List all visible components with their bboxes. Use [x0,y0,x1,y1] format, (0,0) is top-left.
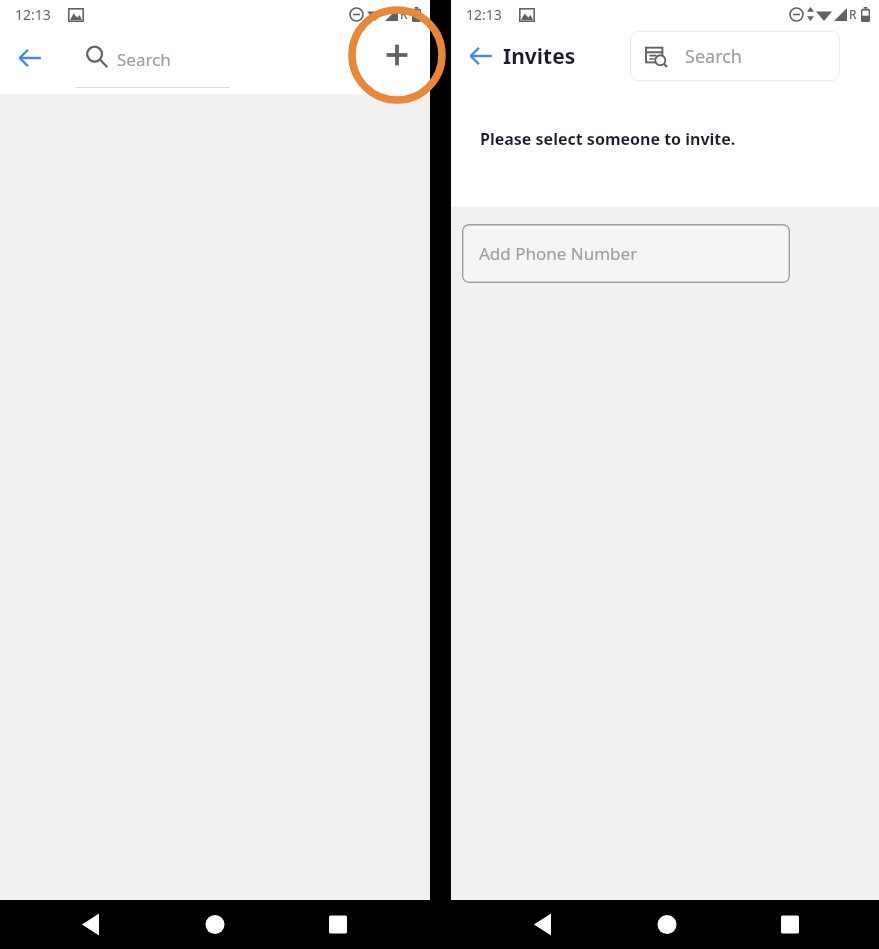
button[interactable]: Add [375,33,419,77]
staticText: 12:13 [15,5,51,24]
staticText: R [400,6,408,22]
button[interactable]: Add Phone Number [462,224,790,283]
button[interactable]: Search [630,31,840,81]
staticText: 12:13 [466,5,502,24]
staticText: R [849,6,857,22]
staticText: Invites [503,42,576,71]
button[interactable]: Search [75,36,230,90]
staticText: Search [117,48,171,71]
staticText: Please select someone to invite. [480,128,736,150]
other: Back [459,34,503,78]
button[interactable]: Back [8,36,52,80]
staticText: Add Phone Number [479,242,638,265]
button[interactable]: Back [459,34,576,78]
staticText: Search [685,44,742,69]
